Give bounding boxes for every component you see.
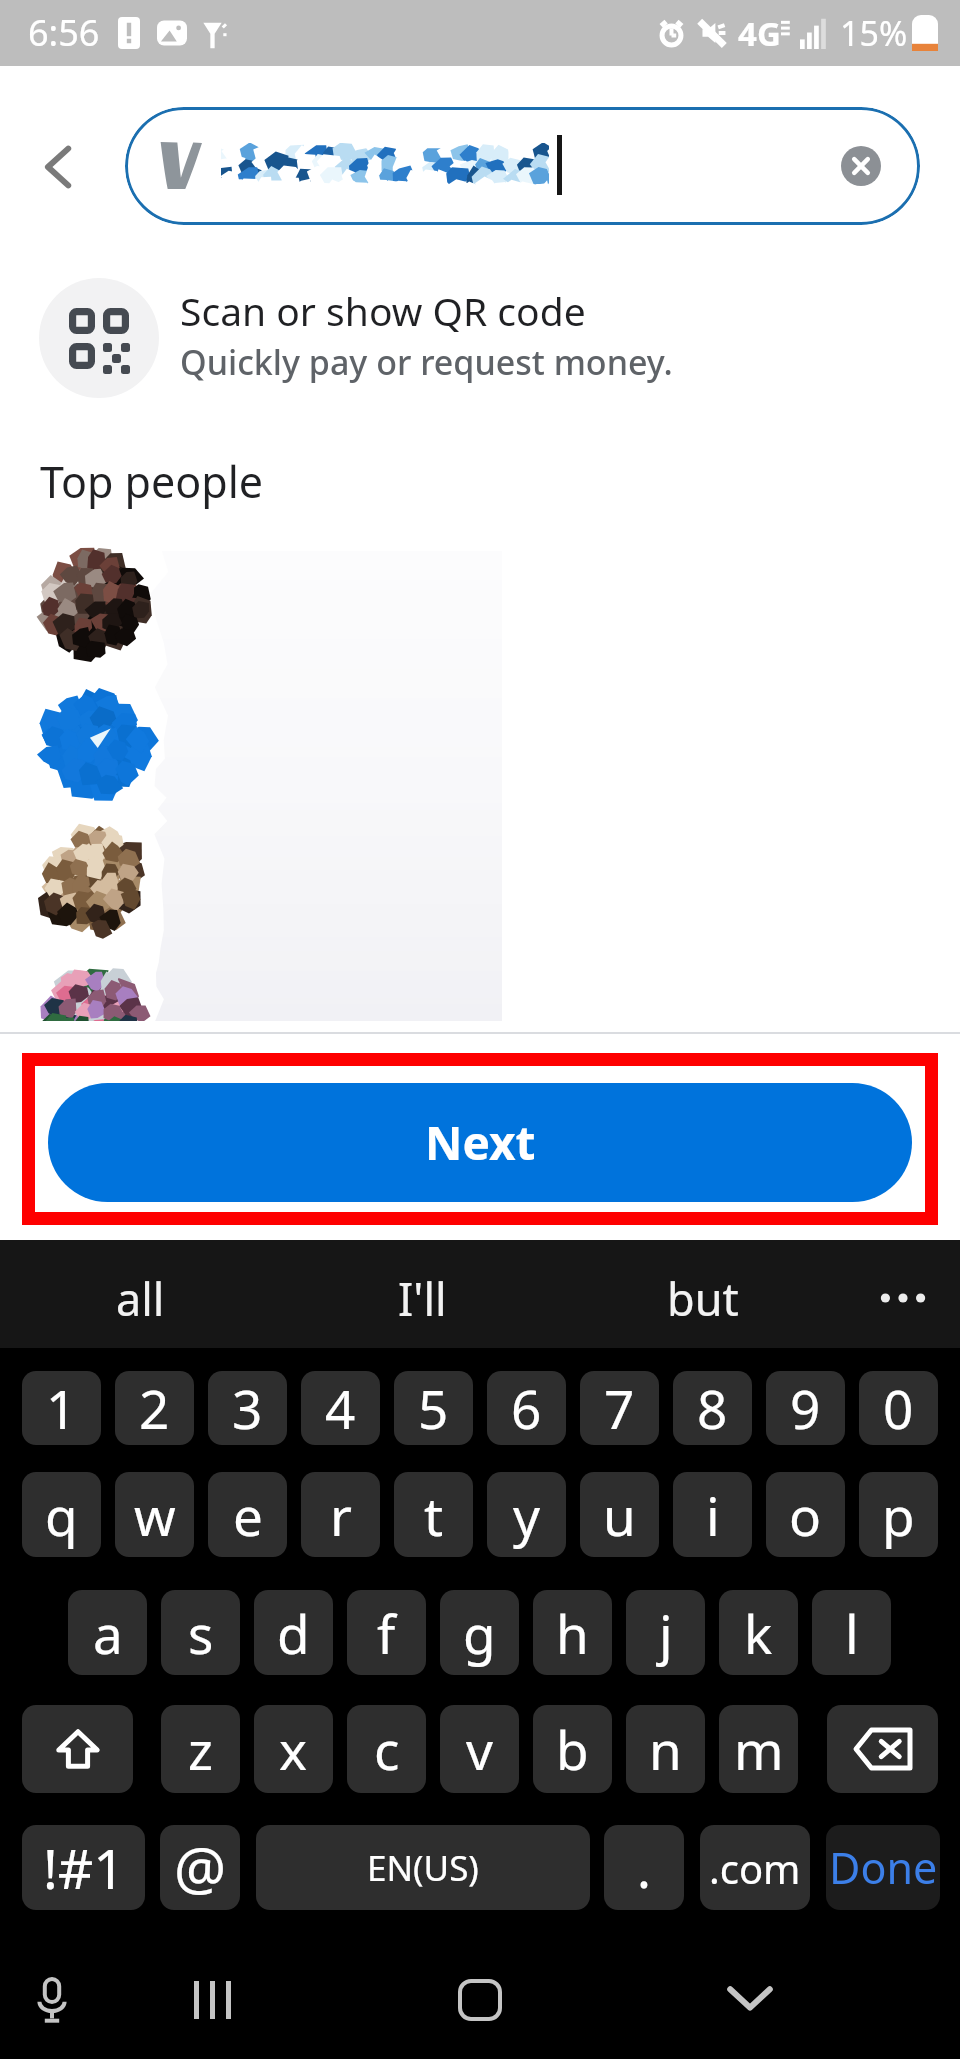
button[interactable]: 6 xyxy=(487,1371,566,1445)
staticText: c xyxy=(374,1713,400,1785)
button[interactable]: 3 xyxy=(208,1371,287,1445)
button[interactable]: !#1 xyxy=(22,1825,145,1910)
staticText: 4 xyxy=(325,1372,356,1444)
button[interactable]: v xyxy=(440,1705,519,1793)
button[interactable]: Clear search xyxy=(830,135,892,197)
staticText: !#1 xyxy=(43,1830,125,1905)
button[interactable]: Scan or show QR code xyxy=(0,272,960,404)
button[interactable]: .com xyxy=(700,1825,810,1910)
button[interactable]: 4 xyxy=(301,1371,380,1445)
button[interactable]: z xyxy=(161,1705,240,1793)
staticText: 1 xyxy=(46,1372,77,1444)
staticText: r xyxy=(330,1479,352,1551)
staticText: m xyxy=(734,1713,784,1785)
staticText: g xyxy=(463,1597,496,1669)
staticText: i xyxy=(706,1479,720,1551)
button[interactable]: u xyxy=(580,1472,659,1557)
button[interactable]: all xyxy=(50,1244,230,1352)
button[interactable]: 2 xyxy=(115,1371,194,1445)
button[interactable] xyxy=(20,673,640,811)
staticText: all xyxy=(116,1268,165,1329)
staticText: f xyxy=(377,1597,396,1669)
staticText: Done xyxy=(829,1838,938,1897)
button[interactable]: e xyxy=(208,1472,287,1557)
button[interactable]: More suggestions xyxy=(858,1244,948,1352)
button[interactable]: Done xyxy=(826,1825,940,1910)
staticText: 15% xyxy=(840,10,908,56)
staticText: 2 xyxy=(139,1372,170,1444)
staticText: q xyxy=(45,1479,78,1551)
staticText: v xyxy=(466,1713,493,1785)
staticText: p xyxy=(882,1479,915,1551)
button[interactable]: c xyxy=(347,1705,426,1793)
button[interactable]: 1 xyxy=(22,1371,101,1445)
button[interactable]: but xyxy=(613,1244,793,1352)
staticText: d xyxy=(277,1597,310,1669)
staticText: 8 xyxy=(697,1372,728,1444)
button[interactable]: n xyxy=(626,1705,705,1793)
button[interactable]: t xyxy=(394,1472,473,1557)
button[interactable]: 7 xyxy=(580,1371,659,1445)
button[interactable]: j xyxy=(626,1590,705,1675)
button[interactable]: 0 xyxy=(859,1371,938,1445)
button[interactable]: 8 xyxy=(673,1371,752,1445)
button[interactable]: q xyxy=(22,1472,101,1557)
button[interactable]: d xyxy=(254,1590,333,1675)
button[interactable]: l xyxy=(812,1590,891,1675)
button[interactable]: Backspace xyxy=(827,1705,938,1793)
button[interactable]: f xyxy=(347,1590,426,1675)
staticText: b xyxy=(556,1713,589,1785)
button[interactable]: x xyxy=(254,1705,333,1793)
staticText: 4G xyxy=(738,11,781,56)
button[interactable]: Home xyxy=(432,1952,528,2048)
button[interactable]: Hide keyboard xyxy=(702,1950,798,2046)
button[interactable]: . xyxy=(604,1825,684,1910)
button[interactable]: w xyxy=(115,1472,194,1557)
staticText: 7 xyxy=(604,1372,635,1444)
staticText: e xyxy=(233,1479,263,1551)
button[interactable]: Shift xyxy=(22,1705,133,1793)
staticText: l xyxy=(845,1597,859,1669)
staticText: a xyxy=(93,1597,123,1669)
staticText: . xyxy=(637,1832,651,1903)
button[interactable]: Next xyxy=(48,1083,912,1202)
staticText: 5 xyxy=(418,1372,449,1444)
button[interactable]: p xyxy=(859,1472,938,1557)
button[interactable] xyxy=(20,812,640,950)
button[interactable]: o xyxy=(766,1472,845,1557)
staticText: w xyxy=(134,1479,176,1551)
button[interactable] xyxy=(20,534,640,672)
staticText: y xyxy=(513,1479,541,1551)
button[interactable]: I'll xyxy=(332,1244,512,1352)
button[interactable]: Voice input xyxy=(4,1952,100,2048)
button[interactable]: @ xyxy=(160,1825,240,1910)
staticText: k xyxy=(744,1597,773,1669)
staticText: Next xyxy=(425,1111,536,1174)
button[interactable]: Clear search xyxy=(125,107,920,225)
button[interactable]: EN(US) xyxy=(256,1825,590,1910)
button[interactable] xyxy=(20,951,640,1089)
button[interactable]: y xyxy=(487,1472,566,1557)
button[interactable]: Recent apps xyxy=(164,1952,260,2048)
button[interactable]: Back xyxy=(26,134,92,200)
button[interactable]: a xyxy=(68,1590,147,1675)
staticText: Quickly pay or request money. xyxy=(180,339,673,385)
button[interactable]: i xyxy=(673,1472,752,1557)
button[interactable]: 5 xyxy=(394,1371,473,1445)
staticText: .com xyxy=(709,1841,801,1895)
button[interactable]: h xyxy=(533,1590,612,1675)
staticText: o xyxy=(789,1479,822,1551)
staticText: n xyxy=(649,1713,682,1785)
staticText: 6 xyxy=(511,1372,542,1444)
button[interactable]: m xyxy=(719,1705,798,1793)
button[interactable]: 9 xyxy=(766,1371,845,1445)
staticText: z xyxy=(188,1713,213,1785)
button[interactable]: k xyxy=(719,1590,798,1675)
staticText: 3 xyxy=(232,1372,263,1444)
button[interactable]: r xyxy=(301,1472,380,1557)
staticText: s xyxy=(188,1597,214,1669)
staticText: Scan or show QR code xyxy=(180,284,586,337)
button[interactable]: g xyxy=(440,1590,519,1675)
button[interactable]: s xyxy=(161,1590,240,1675)
button[interactable]: b xyxy=(533,1705,612,1793)
